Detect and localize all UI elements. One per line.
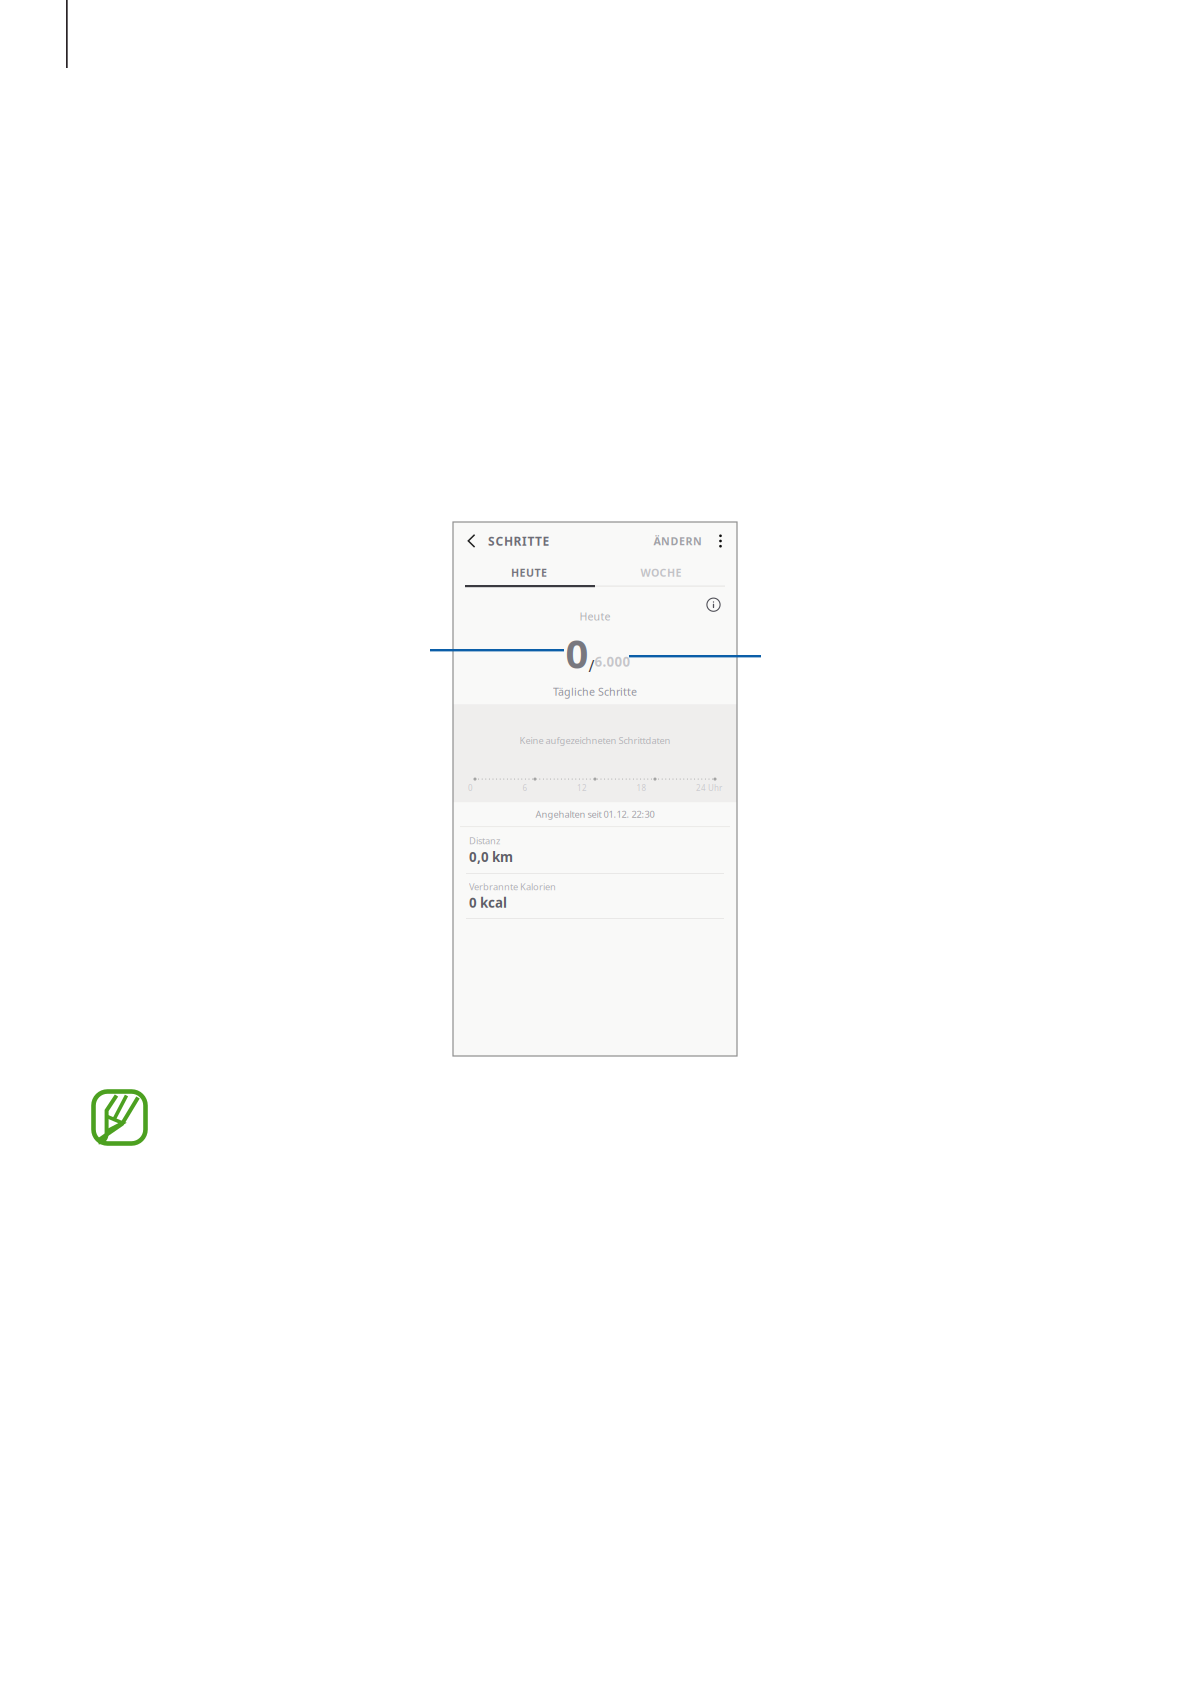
staticText: 12 [577,783,587,793]
staticText: 6.000 [594,653,630,670]
staticText: 6 [522,783,527,793]
staticText: 0 kcal [469,894,507,911]
staticText: 24 Uhr [696,783,722,793]
staticText: / [588,655,594,676]
staticText: 18 [636,783,646,793]
button[interactable]: Distanz [453,827,737,873]
staticText: Angehalten seit 01.12. 22:30 [535,808,654,820]
button[interactable]: ÄNDERN [649,523,706,559]
button[interactable]: Zurück [453,522,488,559]
staticText: Tägliche Schritte [553,684,637,699]
staticText: ÄNDERN [653,534,702,548]
staticText: Heute [579,609,610,623]
staticText: 0 [565,626,588,679]
staticText: 0 [468,783,473,793]
staticText: WOCHE [640,565,681,580]
button[interactable]: Informationen [706,597,721,612]
button[interactable]: WOCHE [595,559,727,586]
staticText: 0,0 km [469,848,513,866]
staticText: Distanz [469,835,500,847]
staticText: Verbrannte Kalorien [469,880,556,893]
staticText: SCHRITTE [488,533,549,549]
button[interactable]: HEUTE [463,559,595,586]
staticText: HEUTE [511,565,547,580]
staticText: Keine aufgezeichneten Schrittdaten [519,734,670,747]
button[interactable]: Verbrannte Kalorien [453,874,737,918]
button[interactable]: Weitere Optionen [706,524,737,557]
